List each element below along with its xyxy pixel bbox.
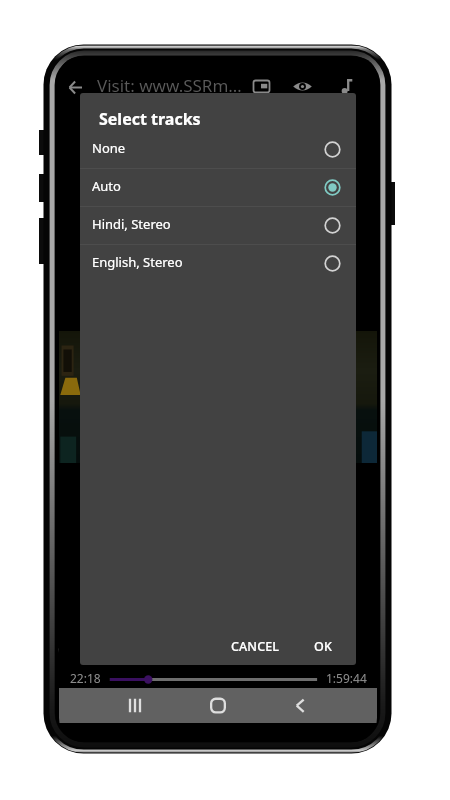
staticText: Auto bbox=[92, 177, 121, 195]
button[interactable]: Back bbox=[61, 73, 89, 101]
button[interactable]: Visibility bbox=[288, 72, 316, 100]
button[interactable]: CANCEL bbox=[221, 630, 290, 663]
button[interactable]: OK bbox=[304, 630, 342, 663]
button[interactable]: Home bbox=[198, 688, 238, 723]
staticText: Visit: www.SSRm… bbox=[97, 74, 242, 97]
staticText: English, Stereo bbox=[92, 253, 183, 271]
staticText: 22:18 bbox=[70, 670, 101, 686]
button[interactable]: Picture in picture bbox=[247, 72, 275, 100]
staticText: None bbox=[92, 139, 126, 157]
button[interactable]: Recents bbox=[115, 688, 155, 723]
button[interactable]: English, Stereo bbox=[80, 245, 356, 282]
button[interactable]: None bbox=[80, 131, 356, 168]
button[interactable]: Hindi, Stereo bbox=[80, 207, 356, 244]
staticText: Hindi, Stereo bbox=[92, 215, 171, 233]
staticText: CANCEL bbox=[231, 638, 280, 655]
button[interactable]: Audio track bbox=[333, 72, 361, 100]
button[interactable]: Back bbox=[280, 688, 320, 723]
button[interactable]: Auto bbox=[80, 169, 356, 206]
staticText: 1:59:44 bbox=[326, 670, 367, 686]
staticText: Select tracks bbox=[99, 108, 201, 130]
staticText: OK bbox=[314, 638, 332, 655]
